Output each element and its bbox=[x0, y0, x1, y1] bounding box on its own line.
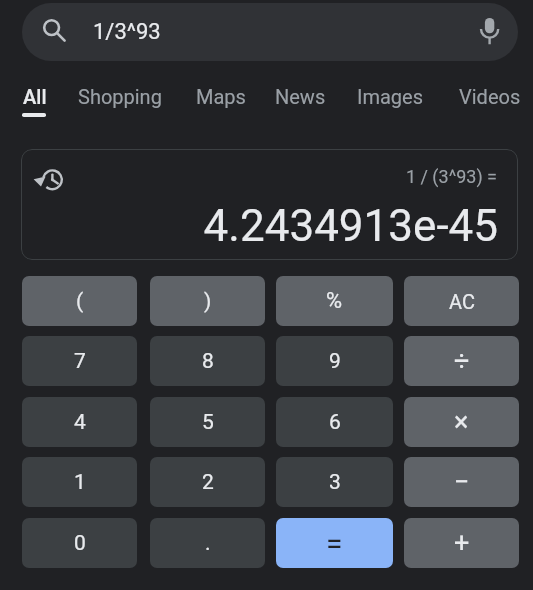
button[interactable]: 1 bbox=[22, 457, 137, 507]
button[interactable]: History bbox=[26, 160, 64, 198]
button[interactable]: 6 bbox=[276, 397, 393, 447]
button[interactable]: = bbox=[276, 518, 393, 568]
button[interactable]: 7 bbox=[22, 336, 137, 386]
button[interactable]: AC bbox=[404, 276, 519, 326]
staticText: 9 bbox=[329, 349, 341, 374]
button[interactable]: 9 bbox=[276, 336, 393, 386]
staticText: Maps bbox=[196, 85, 246, 108]
staticText: Images bbox=[357, 85, 424, 108]
staticText: News bbox=[275, 85, 326, 108]
staticText: Videos bbox=[459, 85, 521, 108]
button[interactable]: . bbox=[150, 518, 265, 568]
staticText: % bbox=[326, 288, 343, 314]
staticText: + bbox=[454, 527, 470, 559]
button[interactable]: 5 bbox=[150, 397, 265, 447]
staticText: All bbox=[23, 85, 47, 108]
button[interactable]: ÷ bbox=[404, 336, 519, 386]
staticText: 6 bbox=[329, 410, 341, 435]
staticText: 1 bbox=[74, 470, 86, 495]
staticText: 5 bbox=[202, 410, 214, 435]
button[interactable]: 0 bbox=[22, 518, 137, 568]
button[interactable]: 1/3^93 bbox=[22, 3, 518, 61]
staticText: . bbox=[205, 531, 211, 556]
staticText: Shopping bbox=[78, 85, 162, 108]
button[interactable]: All bbox=[13, 76, 37, 120]
staticText: ) bbox=[204, 289, 212, 314]
button[interactable]: × bbox=[404, 397, 519, 447]
button[interactable]: − bbox=[404, 457, 519, 507]
staticText: 3 bbox=[329, 470, 341, 495]
staticText: 7 bbox=[74, 349, 86, 374]
staticText: = bbox=[326, 526, 343, 561]
staticText: 4.2434913e-45 bbox=[21, 200, 498, 252]
staticText: AC bbox=[449, 290, 475, 313]
staticText: 2 bbox=[202, 470, 214, 495]
button[interactable]: Shopping bbox=[68, 76, 152, 120]
staticText: 8 bbox=[202, 349, 214, 374]
button[interactable]: 4 bbox=[22, 397, 137, 447]
staticText: 1 / (3^93) = bbox=[21, 166, 497, 187]
button[interactable]: News bbox=[265, 76, 316, 120]
button[interactable]: 3 bbox=[276, 457, 393, 507]
button[interactable]: ) bbox=[150, 276, 265, 326]
staticText: ÷ bbox=[454, 345, 470, 377]
button[interactable]: Images bbox=[347, 76, 414, 120]
staticText: 0 bbox=[74, 531, 86, 556]
button[interactable]: + bbox=[404, 518, 519, 568]
staticText: 4 bbox=[74, 410, 86, 435]
staticText: ( bbox=[76, 289, 84, 314]
button[interactable]: % bbox=[276, 276, 393, 326]
button[interactable]: Videos bbox=[449, 76, 511, 120]
button[interactable]: Maps bbox=[186, 76, 236, 120]
staticText: 1/3^93 bbox=[93, 19, 161, 45]
staticText: × bbox=[454, 406, 469, 438]
button[interactable]: 2 bbox=[150, 457, 265, 507]
staticText: − bbox=[454, 466, 470, 498]
button[interactable]: Voice search bbox=[474, 13, 512, 51]
button[interactable]: 8 bbox=[150, 336, 265, 386]
button[interactable]: ( bbox=[22, 276, 137, 326]
